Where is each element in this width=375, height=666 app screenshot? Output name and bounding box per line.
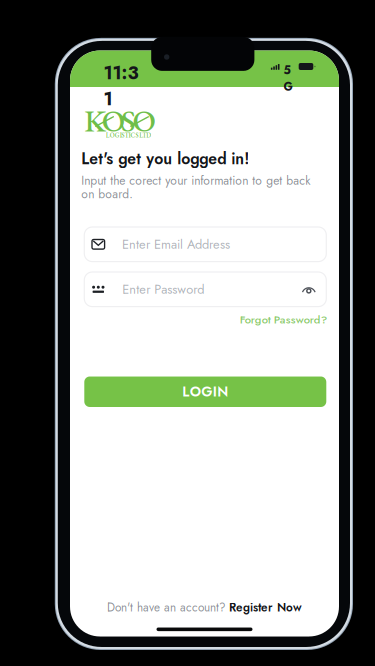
staticText: Enter Email Address	[122, 235, 230, 254]
staticText: KOSO	[84, 100, 155, 140]
staticText: 5G	[284, 62, 293, 95]
staticText: Register Now	[229, 599, 302, 616]
staticText: Enter Password	[122, 280, 204, 299]
staticText: Don't have an account?	[107, 599, 226, 616]
staticText: LOGISTICS LTD	[106, 131, 151, 139]
staticText: Let's get you logged in!	[81, 147, 249, 170]
staticText: Forgot Password?	[240, 311, 328, 328]
button[interactable]: LOGIN	[84, 376, 326, 407]
button[interactable]: Enter Password	[84, 272, 326, 307]
button[interactable]: Don't have an account?	[89, 600, 319, 615]
button[interactable]: Enter Email Address	[84, 227, 326, 262]
staticText: Input the corect your information to get…	[81, 172, 310, 203]
staticText: 11:31	[103, 60, 138, 112]
button[interactable]: Forgot Password?	[208, 312, 328, 326]
staticText: LOGIN	[182, 382, 228, 402]
